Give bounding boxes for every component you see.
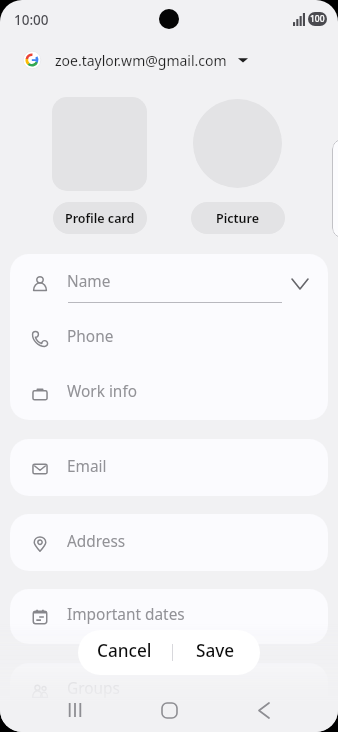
- button[interactable]: Work info: [10, 374, 328, 414]
- button[interactable]: Home: [151, 692, 187, 728]
- button[interactable]: Back: [246, 692, 282, 728]
- button[interactable]: Important dates: [10, 597, 328, 637]
- staticText: Cancel: [97, 639, 152, 662]
- staticText: Save: [196, 639, 235, 662]
- staticText: Profile card: [65, 210, 135, 227]
- staticText: Important dates: [67, 604, 185, 625]
- staticText: zoe.taylor.wm@gmail.com: [55, 51, 227, 70]
- button[interactable]: Profile card: [53, 202, 147, 234]
- staticText: Groups: [67, 678, 120, 699]
- button[interactable]: Picture preview: [193, 99, 282, 188]
- button[interactable]: Email: [10, 449, 328, 489]
- button[interactable]: Save: [171, 630, 260, 675]
- button[interactable]: Groups: [10, 671, 328, 711]
- button[interactable]: Address: [10, 524, 328, 564]
- staticText: 10:00: [14, 11, 49, 29]
- button[interactable]: Cancel: [78, 630, 171, 675]
- button[interactable]: Picture: [191, 202, 285, 234]
- button[interactable]: Recent apps: [57, 692, 93, 728]
- staticText: Picture: [216, 210, 260, 227]
- staticText: Phone: [67, 326, 114, 347]
- staticText: Work info: [67, 381, 137, 402]
- button[interactable]: zoe.taylor.wm@gmail.com: [0, 42, 338, 78]
- button[interactable]: Phone: [10, 319, 328, 359]
- staticText: Address: [67, 531, 126, 552]
- staticText: 100: [310, 13, 325, 25]
- button[interactable]: Name: [10, 260, 328, 308]
- staticText: Name: [67, 271, 111, 292]
- staticText: Email: [67, 456, 107, 477]
